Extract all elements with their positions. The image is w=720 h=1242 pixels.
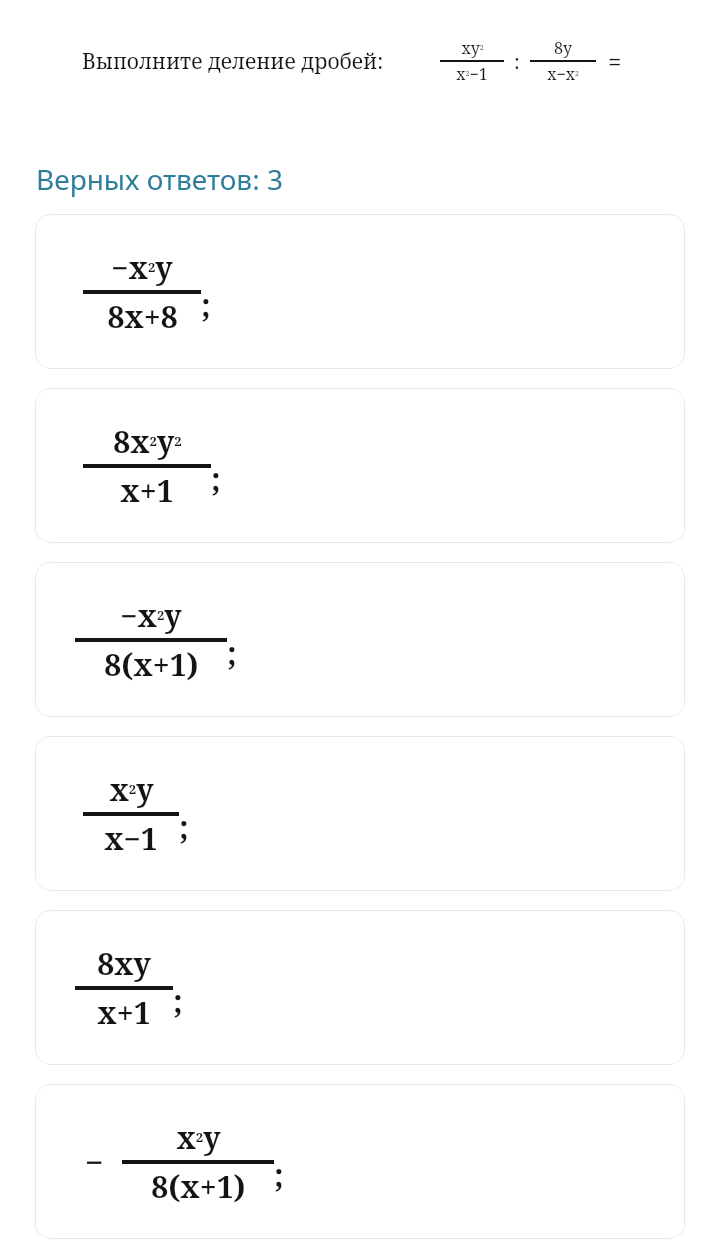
button[interactable]: −x2y bbox=[35, 214, 685, 369]
staticText: : bbox=[514, 48, 520, 75]
staticText: x+1 bbox=[97, 992, 151, 1033]
staticText: ; bbox=[211, 457, 221, 501]
staticText: Верных ответов: 3 bbox=[36, 160, 283, 198]
staticText: −x2y bbox=[120, 595, 182, 636]
staticText: 8(x+1) bbox=[151, 1166, 246, 1207]
staticText: ; bbox=[179, 805, 189, 849]
button[interactable]: x2y bbox=[35, 736, 685, 891]
button[interactable]: −x2y bbox=[35, 562, 685, 717]
staticText: x−1 bbox=[104, 818, 158, 859]
staticText: xy2 bbox=[461, 37, 484, 59]
staticText: −x2y bbox=[111, 247, 173, 288]
staticText: 8xy bbox=[97, 943, 151, 984]
button[interactable]: 8x2y2 bbox=[35, 388, 685, 543]
staticText: 8x2y2 bbox=[113, 421, 182, 462]
staticText: Выполните деление дробей: bbox=[82, 47, 384, 76]
staticText: x2y bbox=[109, 769, 154, 810]
staticText: ; bbox=[201, 283, 211, 327]
staticText: = bbox=[608, 45, 622, 78]
button[interactable]: 8xy bbox=[35, 910, 685, 1065]
staticText: 8y bbox=[554, 37, 572, 59]
staticText: x+1 bbox=[120, 470, 174, 511]
staticText: 8x+8 bbox=[107, 296, 178, 337]
staticText: ; bbox=[173, 979, 183, 1023]
staticText: x−x2 bbox=[547, 63, 579, 85]
staticText: ; bbox=[227, 631, 237, 675]
button[interactable]: − bbox=[35, 1084, 685, 1239]
staticText: ; bbox=[274, 1153, 284, 1197]
staticText: x2y bbox=[176, 1117, 221, 1158]
staticText: x2−1 bbox=[456, 63, 488, 85]
staticText: 8(x+1) bbox=[104, 644, 199, 685]
staticText: − bbox=[85, 1140, 104, 1184]
